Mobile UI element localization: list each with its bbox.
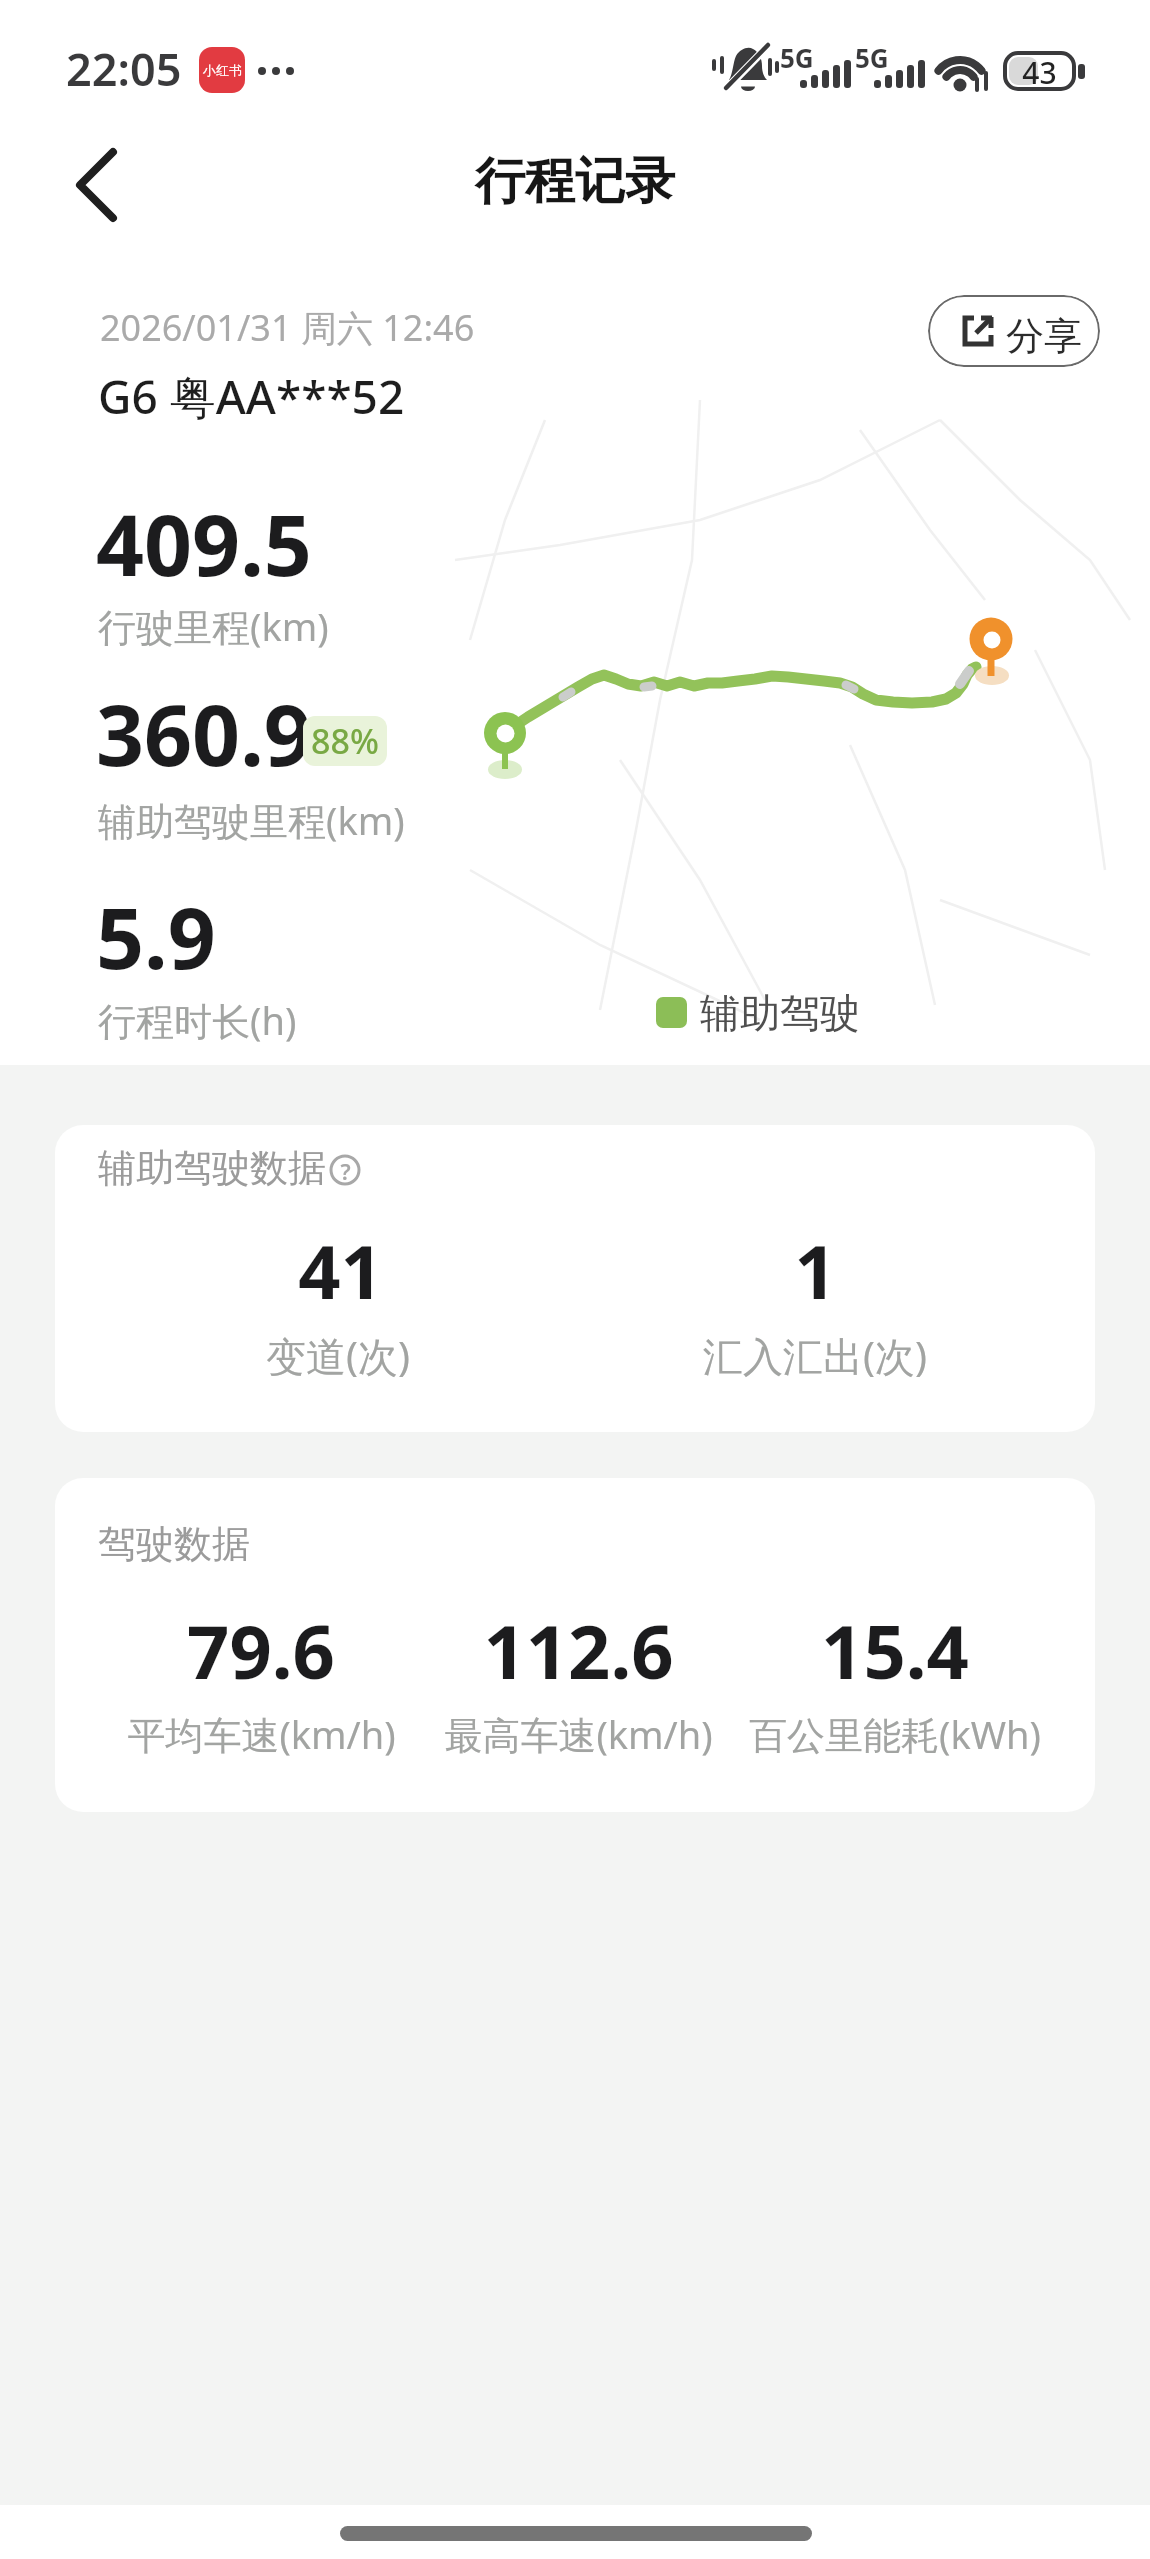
- staticText: 辅助驾驶: [700, 988, 860, 1038]
- staticText: 平均车速(km/h): [127, 1708, 396, 1760]
- button[interactable]: 分享: [928, 295, 1100, 367]
- staticText: 辅助驾驶数据: [98, 1144, 326, 1192]
- button[interactable]: ?: [326, 1152, 364, 1190]
- staticText: 41: [298, 1220, 383, 1321]
- staticText: 409.5: [96, 486, 312, 600]
- staticText: 22:05: [66, 38, 182, 99]
- staticText: 5.9: [96, 879, 216, 993]
- staticText: 5G: [855, 40, 889, 75]
- staticText: 汇入汇出(次): [703, 1328, 927, 1383]
- staticText: 15.4: [821, 1600, 969, 1701]
- staticText: 驾驶数据: [98, 1520, 250, 1568]
- staticText: 百公里能耗(kWh): [749, 1708, 1041, 1760]
- staticText: 5G: [780, 40, 814, 75]
- staticText: 行程记录: [475, 150, 675, 213]
- staticText: 79.6: [187, 1600, 335, 1701]
- staticText: 最高车速(km/h): [444, 1708, 713, 1760]
- staticText: 行程时长(h): [98, 994, 297, 1046]
- staticText: 43: [1022, 52, 1057, 93]
- staticText: 辅助驾驶里程(km): [98, 794, 405, 846]
- button[interactable]: [50, 140, 150, 230]
- staticText: 分享: [1006, 312, 1082, 360]
- staticText: 小红书: [203, 62, 242, 78]
- staticText: 变道(次): [266, 1328, 410, 1383]
- staticText: 2026/01/31 周六 12:46: [100, 303, 475, 352]
- staticText: 360.9: [96, 676, 312, 790]
- staticText: G6 粤AA***52: [98, 365, 405, 428]
- staticText: 112.6: [483, 1600, 674, 1701]
- staticText: 88%: [311, 718, 379, 764]
- staticText: 1: [794, 1220, 837, 1321]
- staticText: ?: [340, 1156, 351, 1186]
- staticText: 行驶里程(km): [98, 600, 329, 652]
